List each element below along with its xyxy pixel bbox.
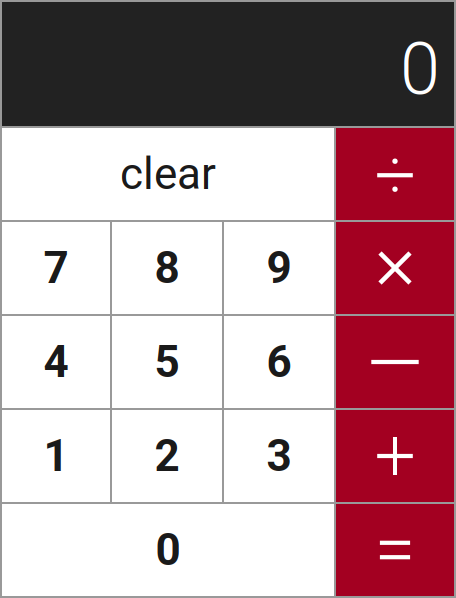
button[interactable]: Equals xyxy=(336,504,454,596)
button[interactable]: Subtract xyxy=(336,316,454,408)
button[interactable]: clear xyxy=(2,128,334,220)
staticText: 1 xyxy=(43,430,68,482)
button[interactable]: Divide xyxy=(336,128,454,220)
staticText: 0 xyxy=(400,27,440,112)
button[interactable]: Multiply xyxy=(336,222,454,314)
button[interactable]: 4 xyxy=(2,316,110,408)
button[interactable]: 0 xyxy=(2,504,334,596)
button[interactable]: 5 xyxy=(112,316,222,408)
button[interactable]: Add xyxy=(336,410,454,502)
button[interactable]: 9 xyxy=(224,222,334,314)
button[interactable]: 3 xyxy=(224,410,334,502)
staticText: clear xyxy=(120,148,216,200)
staticText: 0 xyxy=(155,524,180,576)
button[interactable]: 8 xyxy=(112,222,222,314)
button[interactable]: 6 xyxy=(224,316,334,408)
staticText: 8 xyxy=(154,242,179,294)
staticText: 5 xyxy=(154,336,179,388)
staticText: 4 xyxy=(43,336,68,388)
staticText: 9 xyxy=(266,242,291,294)
staticText: 2 xyxy=(154,430,179,482)
button[interactable]: 7 xyxy=(2,222,110,314)
staticText: 3 xyxy=(266,430,291,482)
staticText: 6 xyxy=(266,336,291,388)
button[interactable]: 2 xyxy=(112,410,222,502)
staticText: 7 xyxy=(43,242,68,294)
button[interactable]: 1 xyxy=(2,410,110,502)
